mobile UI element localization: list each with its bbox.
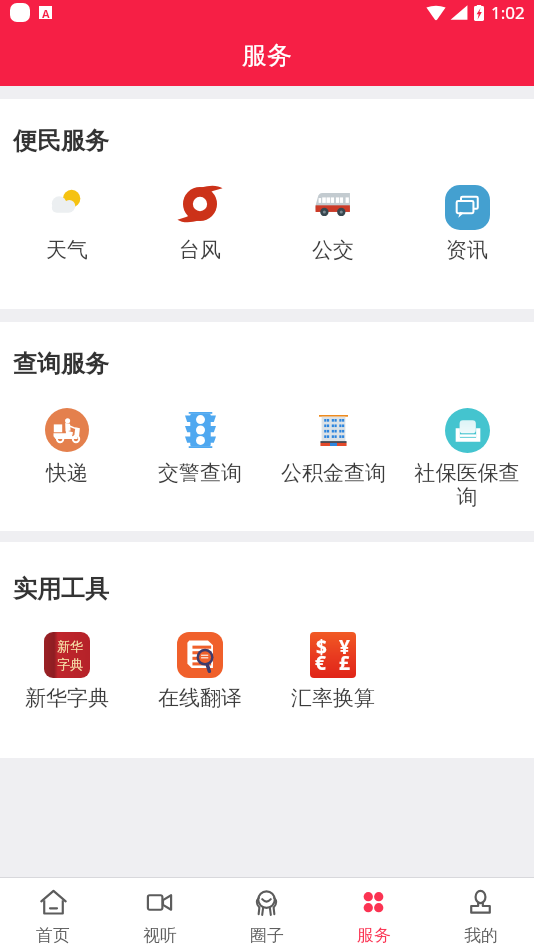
staticText: 公交	[312, 237, 354, 263]
staticText: 1:02	[491, 1, 525, 24]
button[interactable]: 公积金查询	[266, 407, 400, 486]
button[interactable]: 台风	[133, 184, 266, 263]
button[interactable]: $	[266, 632, 400, 711]
button[interactable]: 圈子	[213, 878, 320, 950]
staticText: 首页	[36, 925, 70, 946]
button[interactable]: 社保医保查询	[400, 407, 534, 510]
staticText: A	[42, 6, 50, 19]
staticText: 快递	[46, 460, 88, 486]
staticText: 公积金查询	[281, 460, 386, 486]
staticText: 在线翻译	[158, 685, 242, 711]
staticText: €	[315, 650, 326, 676]
staticText: 实用工具	[13, 574, 109, 604]
button[interactable]: 我的	[427, 878, 534, 950]
staticText: 资讯	[446, 237, 488, 263]
button[interactable]: 天气	[0, 184, 133, 263]
staticText: $	[316, 634, 327, 660]
staticText: ¥	[339, 634, 350, 660]
button[interactable]: 首页	[0, 878, 106, 950]
button[interactable]: 公交	[266, 184, 400, 263]
button[interactable]: 资讯	[400, 184, 534, 263]
staticText: 字典	[57, 656, 83, 672]
staticText: 社保医保查询	[408, 460, 526, 510]
button[interactable]: 在线翻译	[133, 632, 266, 711]
staticText: 汇率换算	[291, 685, 375, 711]
staticText: 天气	[46, 237, 88, 263]
staticText: 我的	[464, 925, 498, 946]
button[interactable]: 视听	[106, 878, 213, 950]
staticText: 新华字典	[25, 685, 109, 711]
staticText: 交警查询	[158, 460, 242, 486]
staticText: 圈子	[250, 925, 284, 946]
button[interactable]: 交警查询	[133, 407, 266, 486]
button[interactable]: 新华	[0, 632, 133, 711]
button[interactable]: 快递	[0, 407, 133, 486]
staticText: 台风	[179, 237, 221, 263]
staticText: 便民服务	[13, 126, 109, 156]
staticText: 视听	[143, 925, 177, 946]
staticText: 查询服务	[13, 349, 109, 379]
staticText: 新华	[57, 638, 83, 654]
staticText: 服务	[357, 925, 391, 946]
staticText: £	[339, 650, 350, 676]
staticText: 服务	[242, 40, 292, 71]
button[interactable]: 服务	[320, 878, 427, 950]
